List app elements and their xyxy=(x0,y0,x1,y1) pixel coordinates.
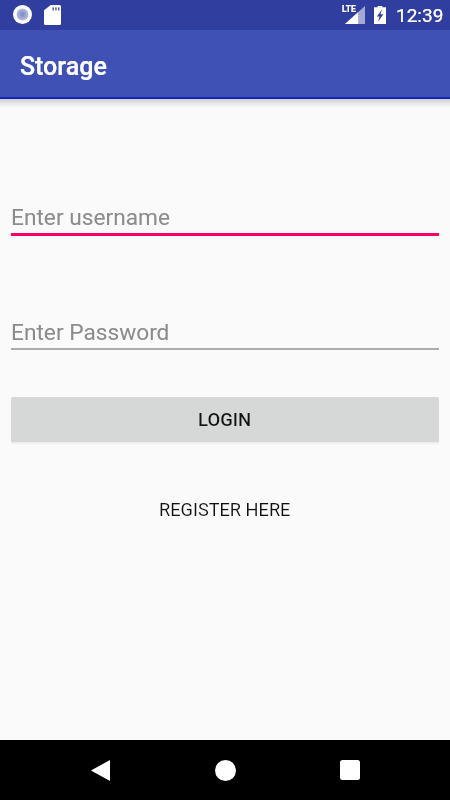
staticText: Enter username xyxy=(11,204,170,231)
staticText: Enter Password xyxy=(11,319,170,346)
button[interactable]: REGISTER HERE xyxy=(149,494,301,525)
button[interactable]: Recent apps xyxy=(320,740,380,800)
staticText: LTE xyxy=(342,4,356,14)
staticText: LOGIN xyxy=(198,409,252,431)
button[interactable]: Enter Password xyxy=(11,302,439,354)
button[interactable]: Enter username xyxy=(11,187,439,240)
staticText: 12:39 xyxy=(396,4,444,26)
staticText: Storage xyxy=(20,52,107,81)
button[interactable]: LOGIN xyxy=(11,397,439,442)
button[interactable]: Back xyxy=(70,740,130,800)
staticText: REGISTER HERE xyxy=(159,499,291,520)
button[interactable]: Home xyxy=(195,740,255,800)
